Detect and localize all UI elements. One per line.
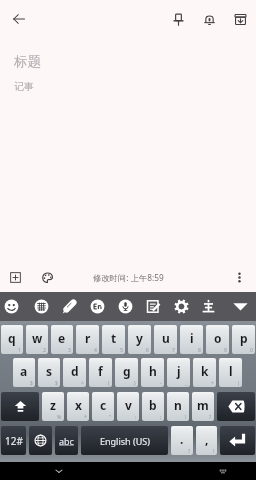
button[interactable]: b bbox=[142, 392, 164, 421]
staticText: 1 bbox=[18, 347, 21, 354]
button[interactable]: y bbox=[128, 325, 151, 354]
staticText: 0 bbox=[250, 347, 253, 354]
button[interactable]: . bbox=[171, 426, 193, 455]
staticText: m bbox=[197, 397, 209, 413]
button[interactable]: Shift bbox=[1, 392, 39, 421]
button[interactable]: Change language bbox=[29, 426, 52, 455]
button[interactable]: q bbox=[1, 325, 23, 354]
staticText: t bbox=[111, 330, 117, 346]
button[interactable]: Add bbox=[5, 267, 25, 287]
button[interactable]: p bbox=[232, 325, 255, 354]
staticText: w bbox=[32, 330, 43, 346]
staticText: i bbox=[190, 330, 194, 346]
staticText: ! bbox=[185, 414, 187, 421]
staticText: 9 bbox=[224, 347, 227, 354]
staticText: p bbox=[240, 330, 248, 346]
staticText: 5 bbox=[120, 347, 123, 354]
button[interactable]: v bbox=[117, 392, 139, 421]
button[interactable]: Hide keyboard bbox=[52, 464, 66, 478]
button[interactable]: Pin note bbox=[163, 4, 193, 34]
staticText: x bbox=[75, 397, 82, 413]
button[interactable]: Handwriting bbox=[56, 292, 82, 321]
staticText: ^ bbox=[81, 380, 84, 387]
staticText: 标题 bbox=[14, 53, 41, 70]
button[interactable]: abc bbox=[55, 426, 78, 455]
staticText: j bbox=[177, 363, 181, 379]
staticText: abc bbox=[59, 435, 74, 447]
button[interactable]: t bbox=[102, 325, 125, 354]
staticText: c bbox=[100, 397, 107, 413]
button[interactable]: Archive bbox=[225, 4, 255, 34]
button[interactable]: Backspace bbox=[217, 392, 255, 421]
staticText: r bbox=[85, 330, 91, 346]
button[interactable]: Main menu bbox=[195, 292, 221, 321]
staticText: 12# bbox=[5, 434, 23, 448]
button[interactable]: k bbox=[193, 358, 216, 387]
staticText: $ bbox=[55, 380, 58, 387]
button[interactable]: English (US) bbox=[81, 426, 168, 455]
staticText: 2 bbox=[43, 347, 46, 354]
staticText: $ bbox=[30, 380, 33, 387]
staticText: z bbox=[50, 397, 56, 413]
button[interactable]: s bbox=[38, 358, 60, 387]
staticText: 6 bbox=[146, 347, 149, 354]
button[interactable]: c bbox=[92, 392, 114, 421]
button[interactable]: g bbox=[115, 358, 138, 387]
button[interactable]: o bbox=[206, 325, 229, 354]
staticText: d bbox=[71, 363, 79, 379]
staticText: + bbox=[211, 380, 214, 387]
staticText: _ bbox=[185, 380, 188, 387]
button[interactable]: w bbox=[26, 325, 48, 354]
button[interactable]: Back bbox=[4, 4, 34, 34]
staticText: ; bbox=[160, 414, 162, 421]
staticText: 3 bbox=[68, 347, 71, 354]
staticText: q bbox=[8, 330, 16, 346]
button[interactable]: e bbox=[51, 325, 73, 354]
staticText: h bbox=[149, 363, 157, 379]
staticText: , bbox=[205, 431, 209, 447]
staticText: l bbox=[229, 363, 233, 379]
staticText: a bbox=[20, 363, 28, 379]
staticText: . bbox=[180, 431, 184, 447]
staticText: English (US) bbox=[100, 435, 150, 447]
button[interactable]: More options bbox=[229, 267, 249, 287]
staticText: % bbox=[57, 414, 62, 421]
button[interactable]: d bbox=[63, 358, 86, 387]
staticText: e bbox=[58, 330, 66, 346]
button[interactable]: Hide keyboard bbox=[227, 292, 253, 321]
button[interactable]: i bbox=[180, 325, 203, 354]
staticText: - bbox=[160, 380, 162, 387]
button[interactable]: n bbox=[167, 392, 189, 421]
button[interactable]: Set reminder bbox=[194, 4, 224, 34]
button[interactable]: Change colour bbox=[37, 267, 57, 287]
button[interactable]: 12# bbox=[1, 426, 26, 455]
button[interactable]: Keyboard indicator bbox=[216, 464, 230, 478]
staticText: 7 bbox=[172, 347, 175, 354]
button[interactable]: Emoji bbox=[0, 292, 24, 321]
staticText: ( bbox=[108, 380, 110, 387]
staticText: f bbox=[98, 363, 103, 379]
button[interactable]: , bbox=[196, 426, 217, 455]
staticText: | bbox=[237, 380, 240, 387]
button[interactable]: Settings bbox=[168, 292, 194, 321]
button[interactable]: l bbox=[219, 358, 242, 387]
staticText: 4 bbox=[94, 347, 97, 354]
button[interactable]: m bbox=[192, 392, 214, 421]
button[interactable]: Voice input bbox=[112, 292, 138, 321]
button[interactable]: z bbox=[42, 392, 64, 421]
button[interactable]: r bbox=[76, 325, 99, 354]
button[interactable]: a bbox=[13, 358, 35, 387]
button[interactable]: h bbox=[141, 358, 164, 387]
button[interactable]: u bbox=[154, 325, 177, 354]
staticText: 修改时间: 上午8:59 bbox=[93, 272, 164, 283]
button[interactable]: x bbox=[67, 392, 89, 421]
button[interactable]: English input bbox=[84, 292, 110, 321]
button[interactable]: Chinese input bbox=[28, 292, 54, 321]
button[interactable]: f bbox=[89, 358, 112, 387]
button[interactable]: Notes bbox=[140, 292, 166, 321]
staticText: 记事 bbox=[14, 80, 34, 93]
staticText: s bbox=[46, 363, 53, 379]
button[interactable]: j bbox=[167, 358, 190, 387]
staticText: 8 bbox=[198, 347, 201, 354]
button[interactable]: Enter bbox=[220, 426, 255, 455]
